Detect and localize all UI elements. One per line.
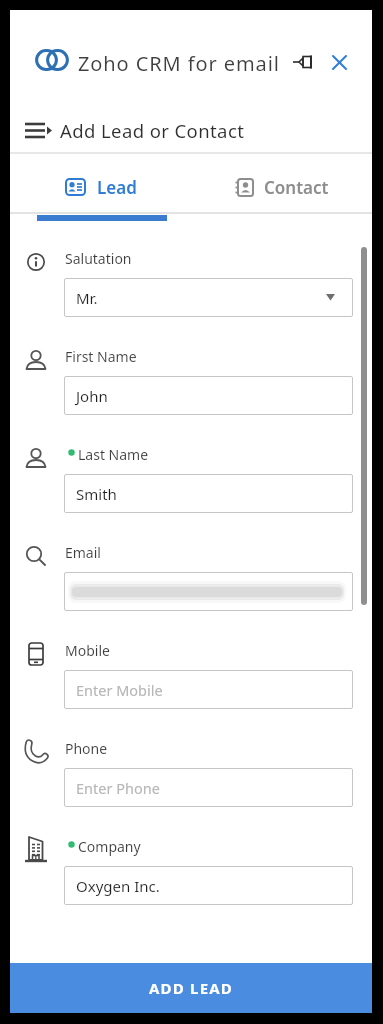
button[interactable]: Enter Mobile [64, 670, 353, 709]
staticText: Enter Phone [76, 778, 160, 798]
staticText: Contact [264, 176, 329, 199]
button[interactable] [293, 54, 315, 70]
staticText: First Name [65, 347, 137, 366]
button[interactable]: Oxygen Inc. [64, 866, 353, 905]
button[interactable] [332, 55, 347, 70]
staticText: Smith [76, 484, 117, 504]
button[interactable]: John [64, 376, 353, 415]
staticText: Email [65, 543, 101, 562]
staticText: Zoho CRM for email [78, 50, 280, 77]
staticText: John [76, 386, 108, 406]
button[interactable]: Enter Phone [64, 768, 353, 807]
staticText: Enter Mobile [76, 680, 163, 700]
staticText: Salutation [65, 249, 132, 268]
staticText: Last Name [78, 445, 149, 464]
staticText: Add Lead or Contact [60, 118, 245, 143]
staticText: ADD LEAD [149, 978, 233, 998]
button[interactable]: Mr. [64, 278, 353, 317]
button[interactable]: ADD LEAD [10, 963, 372, 1013]
staticText: Phone [65, 739, 108, 758]
button[interactable]: Contact [191, 160, 372, 214]
staticText: Company [78, 837, 141, 856]
button[interactable]: Smith [64, 474, 353, 513]
staticText: Mr. [76, 288, 98, 308]
staticText: Lead [97, 176, 137, 199]
button[interactable] [64, 572, 353, 611]
staticText: Mobile [65, 641, 110, 660]
button[interactable]: Lead [10, 160, 191, 214]
staticText: Oxygen Inc. [76, 876, 160, 896]
